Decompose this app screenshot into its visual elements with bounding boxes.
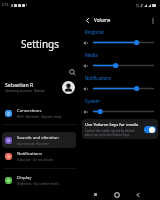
button[interactable]: Back	[82, 15, 93, 26]
staticText: Sounds and vibration	[17, 135, 59, 141]
staticText: Volume	[94, 17, 111, 23]
staticText: Sound mode · Ringtone	[17, 142, 49, 146]
button[interactable]: Home	[111, 189, 122, 200]
staticText: Media	[85, 52, 98, 58]
button[interactable]: Notifications	[2, 148, 76, 164]
staticText: Wi-Fi · Bluetooth · Airplane mode	[17, 115, 62, 119]
staticText: Notifications	[17, 151, 42, 157]
button[interactable]: Sebastian R	[0, 78, 80, 96]
button[interactable]: Display	[2, 172, 76, 188]
staticText: Ringtone	[85, 29, 104, 35]
staticText: Brightness · Eye comfort shield	[17, 182, 59, 186]
button[interactable]: Use Volume keys for media	[82, 119, 158, 139]
button[interactable]: Sounds and vibration	[2, 132, 76, 148]
button[interactable]: Search	[67, 67, 78, 78]
staticText: Use Volume keys for media	[85, 122, 139, 128]
staticText: Display	[17, 175, 32, 181]
button[interactable]: Recent apps	[90, 189, 101, 200]
staticText: Samsung account · Review	[5, 89, 45, 93]
staticText: Status bar · Do not disturb	[17, 158, 53, 162]
staticText: 2:15	[2, 3, 9, 7]
button[interactable]: Connections	[2, 105, 76, 121]
button[interactable]: More options	[147, 15, 158, 26]
button[interactable]: Back	[132, 189, 143, 200]
staticText: Notifications	[85, 75, 112, 81]
staticText: Settings	[21, 37, 60, 51]
staticText: System	[85, 98, 100, 104]
staticText: Control the media volume by default when…	[85, 129, 135, 137]
staticText: Connections	[17, 108, 42, 114]
staticText: Sebastian R	[5, 81, 34, 88]
